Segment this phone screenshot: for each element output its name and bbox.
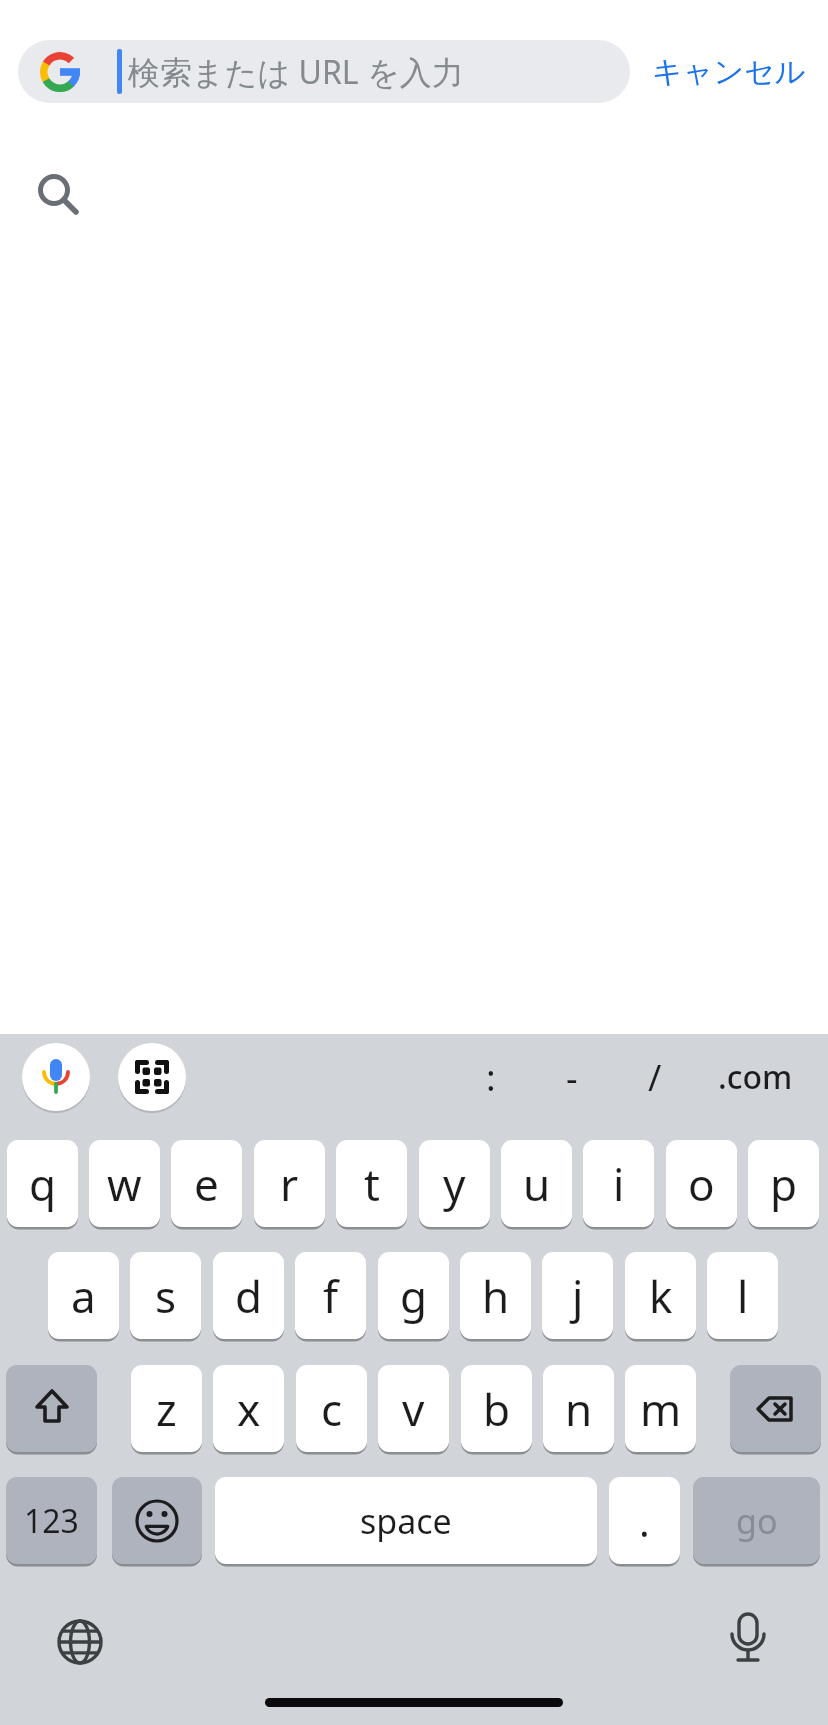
staticText: 123 [24, 1499, 79, 1543]
button[interactable]: キャンセル [630, 40, 828, 103]
staticText: h [482, 1266, 510, 1326]
button[interactable] [730, 1365, 821, 1452]
button[interactable]: b [461, 1365, 532, 1452]
staticText: s [155, 1266, 177, 1326]
button[interactable]: p [748, 1140, 819, 1227]
staticText: y [443, 1154, 466, 1214]
staticText: / [648, 1053, 662, 1102]
staticText: z [156, 1379, 177, 1439]
staticText: a [71, 1266, 96, 1326]
button[interactable]: n [543, 1365, 614, 1452]
button[interactable]: j [542, 1252, 613, 1339]
staticText: i [613, 1154, 625, 1214]
button[interactable] [56, 1618, 104, 1666]
button[interactable] [724, 1614, 772, 1662]
staticText: m [640, 1379, 682, 1439]
button[interactable]: r [254, 1140, 325, 1227]
button[interactable]: / [615, 1043, 695, 1111]
button[interactable]: : [451, 1043, 531, 1111]
staticText: l [737, 1266, 749, 1326]
button[interactable] [112, 1477, 202, 1564]
staticText: go [736, 1498, 778, 1544]
button[interactable]: s [130, 1252, 201, 1339]
staticText: o [688, 1154, 715, 1214]
staticText: b [483, 1379, 511, 1439]
staticText: w [107, 1154, 142, 1214]
staticText: e [194, 1154, 219, 1214]
button[interactable]: e [171, 1140, 242, 1227]
staticText: x [237, 1379, 261, 1439]
staticText: u [523, 1154, 551, 1214]
button[interactable]: f [295, 1252, 366, 1339]
staticText: c [321, 1379, 343, 1439]
button[interactable]: v [378, 1365, 449, 1452]
staticText: r [280, 1154, 299, 1214]
button[interactable]: c [296, 1365, 367, 1452]
button[interactable]: t [336, 1140, 407, 1227]
button[interactable]: x [213, 1365, 284, 1452]
button[interactable]: u [501, 1140, 572, 1227]
button[interactable]: w [89, 1140, 160, 1227]
button[interactable]: .com [695, 1043, 815, 1111]
staticText: space [360, 1498, 452, 1544]
button[interactable]: m [625, 1365, 696, 1452]
staticText: : [486, 1053, 496, 1102]
button[interactable]: z [131, 1365, 202, 1452]
button[interactable]: d [213, 1252, 284, 1339]
button[interactable]: o [666, 1140, 737, 1227]
button[interactable]: l [707, 1252, 778, 1339]
button[interactable]: q [7, 1140, 78, 1227]
button[interactable]: 検索または URL を入力 [18, 40, 630, 103]
button[interactable]: - [532, 1043, 612, 1111]
staticText: 検索または URL を入力 [128, 50, 464, 94]
button[interactable]: 123 [6, 1477, 97, 1564]
staticText: g [400, 1266, 428, 1326]
staticText: - [566, 1053, 578, 1102]
staticText: . [639, 1494, 650, 1548]
staticText: n [565, 1379, 593, 1439]
button[interactable]: i [583, 1140, 654, 1227]
staticText: v [402, 1379, 425, 1439]
staticText: f [323, 1266, 339, 1326]
button[interactable] [22, 1043, 90, 1111]
button[interactable] [6, 1365, 97, 1452]
staticText: キャンセル [652, 53, 806, 91]
button[interactable]: space [215, 1477, 597, 1564]
button[interactable]: h [460, 1252, 531, 1339]
staticText: d [235, 1266, 263, 1326]
staticText: q [29, 1154, 57, 1214]
staticText: k [649, 1266, 673, 1326]
staticText: .com [718, 1055, 793, 1099]
staticText: t [364, 1154, 380, 1214]
staticText: j [572, 1266, 584, 1326]
button[interactable]: k [625, 1252, 696, 1339]
button[interactable]: . [609, 1477, 680, 1564]
button[interactable]: go [693, 1477, 820, 1564]
button[interactable] [118, 1043, 186, 1111]
staticText: p [770, 1154, 798, 1214]
button[interactable]: a [48, 1252, 119, 1339]
button[interactable]: y [419, 1140, 490, 1227]
button[interactable]: g [378, 1252, 449, 1339]
